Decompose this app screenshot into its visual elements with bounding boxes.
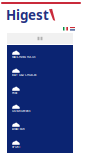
button[interactable]: BAY OLD CHOICES xyxy=(7,63,73,81)
button[interactable]: AMATEUR xyxy=(7,117,73,135)
staticText: BAY OLD CHOICES xyxy=(12,73,36,77)
button[interactable]: Italiano xyxy=(63,27,68,30)
button[interactable]: FREE xyxy=(7,81,73,99)
staticText: Higest xyxy=(6,6,49,24)
button[interactable]: OUTGROWERS xyxy=(7,99,73,117)
button[interactable]: English xyxy=(70,27,75,30)
staticText: FREE xyxy=(12,91,17,95)
staticText: MATCHING FOCUS xyxy=(12,55,35,59)
button[interactable]: MATCHING FOCUS xyxy=(7,45,73,63)
staticText: OUTGROWERS xyxy=(12,109,30,113)
staticText: SPORT xyxy=(12,145,21,149)
staticText: AMATEUR xyxy=(12,127,25,131)
button[interactable]: SPORT xyxy=(7,135,73,153)
